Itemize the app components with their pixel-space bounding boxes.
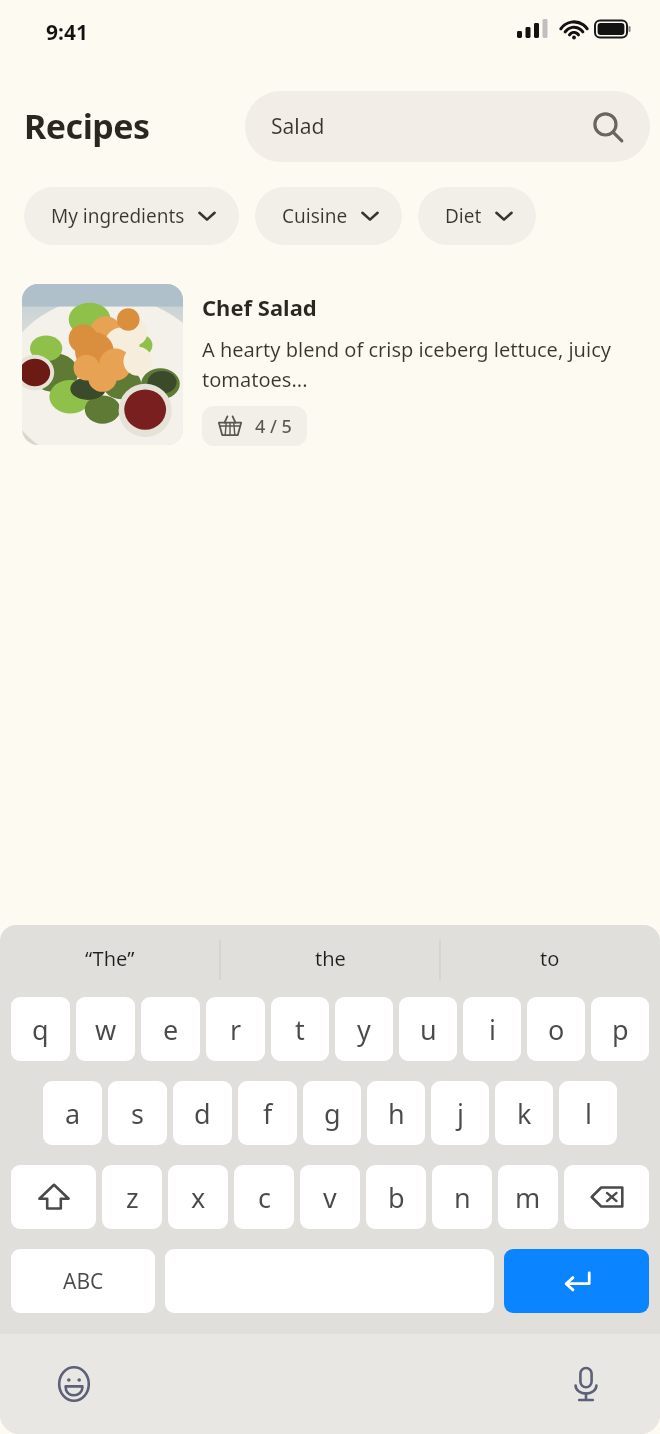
staticText: u bbox=[420, 1011, 437, 1048]
staticText: v bbox=[323, 1179, 337, 1216]
staticText: x bbox=[191, 1179, 206, 1216]
staticText: i bbox=[489, 1011, 496, 1048]
staticText: b bbox=[388, 1179, 405, 1216]
button[interactable]: Salad bbox=[245, 91, 650, 162]
staticText: m bbox=[515, 1179, 541, 1216]
staticText: w bbox=[95, 1011, 117, 1048]
other: Search bbox=[592, 111, 624, 143]
staticText: Recipes bbox=[24, 103, 150, 149]
button[interactable]: e bbox=[141, 997, 200, 1061]
button[interactable]: Diet bbox=[418, 187, 536, 245]
staticText: “The” bbox=[85, 945, 135, 972]
button[interactable]: Emoji bbox=[50, 1360, 98, 1408]
staticText: A hearty blend of crisp iceberg lettuce,… bbox=[202, 336, 638, 393]
staticText: My ingredients bbox=[51, 203, 185, 229]
staticText: k bbox=[517, 1095, 532, 1132]
staticText: j bbox=[457, 1095, 464, 1132]
button[interactable]: y bbox=[335, 997, 393, 1061]
button[interactable]: w bbox=[76, 997, 135, 1061]
staticText: Diet bbox=[445, 203, 482, 229]
button[interactable]: l bbox=[559, 1081, 617, 1145]
button[interactable]: Backspace bbox=[564, 1165, 649, 1229]
button[interactable]: v bbox=[300, 1165, 360, 1229]
staticText: Cuisine bbox=[282, 203, 348, 229]
staticText: l bbox=[585, 1095, 592, 1132]
staticText: the bbox=[315, 945, 346, 972]
staticText: z bbox=[126, 1179, 139, 1216]
button[interactable]: Return bbox=[504, 1249, 649, 1313]
staticText: c bbox=[258, 1179, 271, 1216]
button[interactable]: the bbox=[220, 925, 440, 992]
button[interactable]: 4 / 5 bbox=[202, 406, 307, 446]
button[interactable]: p bbox=[591, 997, 649, 1061]
button[interactable]: f bbox=[238, 1081, 297, 1145]
staticText: 9:41 bbox=[46, 18, 88, 47]
button[interactable]: Chef Salad bbox=[0, 284, 660, 446]
staticText: h bbox=[388, 1095, 405, 1132]
staticText: d bbox=[194, 1095, 211, 1132]
button[interactable]: x bbox=[168, 1165, 228, 1229]
button[interactable]: m bbox=[498, 1165, 558, 1229]
button[interactable]: j bbox=[431, 1081, 489, 1145]
button[interactable]: i bbox=[463, 997, 521, 1061]
staticText: ABC bbox=[63, 1267, 104, 1296]
button[interactable]: g bbox=[303, 1081, 361, 1145]
button[interactable]: z bbox=[102, 1165, 162, 1229]
button[interactable]: ABC bbox=[11, 1249, 155, 1313]
button[interactable]: o bbox=[527, 997, 585, 1061]
button[interactable]: k bbox=[495, 1081, 553, 1145]
button[interactable]: Voice input bbox=[562, 1360, 610, 1408]
button[interactable]: u bbox=[399, 997, 457, 1061]
button[interactable]: Cuisine bbox=[255, 187, 402, 245]
staticText: 4 / 5 bbox=[255, 414, 292, 439]
staticText: n bbox=[454, 1179, 471, 1216]
button[interactable]: t bbox=[271, 997, 329, 1061]
staticText: a bbox=[65, 1095, 81, 1132]
staticText: f bbox=[263, 1095, 273, 1132]
staticText: to bbox=[540, 945, 560, 972]
button[interactable]: q bbox=[11, 997, 70, 1061]
staticText: s bbox=[131, 1095, 144, 1132]
button[interactable]: My ingredients bbox=[24, 187, 239, 245]
button[interactable]: n bbox=[432, 1165, 492, 1229]
staticText: o bbox=[548, 1011, 565, 1048]
button[interactable]: b bbox=[366, 1165, 426, 1229]
button[interactable]: r bbox=[206, 997, 265, 1061]
staticText: q bbox=[32, 1011, 49, 1048]
staticText: t bbox=[295, 1011, 305, 1048]
button[interactable]: Shift bbox=[11, 1165, 96, 1229]
staticText: p bbox=[612, 1011, 629, 1048]
staticText: y bbox=[357, 1011, 371, 1048]
staticText: g bbox=[324, 1095, 341, 1132]
button[interactable]: h bbox=[367, 1081, 425, 1145]
staticText: e bbox=[163, 1011, 179, 1048]
button[interactable]: s bbox=[108, 1081, 167, 1145]
staticText: Chef Salad bbox=[202, 292, 317, 322]
staticText: r bbox=[230, 1011, 242, 1048]
button[interactable]: c bbox=[234, 1165, 294, 1229]
button[interactable]: d bbox=[173, 1081, 232, 1145]
button[interactable]: “The” bbox=[0, 925, 220, 992]
button[interactable]: to bbox=[440, 925, 660, 992]
staticText: Salad bbox=[271, 112, 592, 141]
button[interactable]: a bbox=[43, 1081, 102, 1145]
